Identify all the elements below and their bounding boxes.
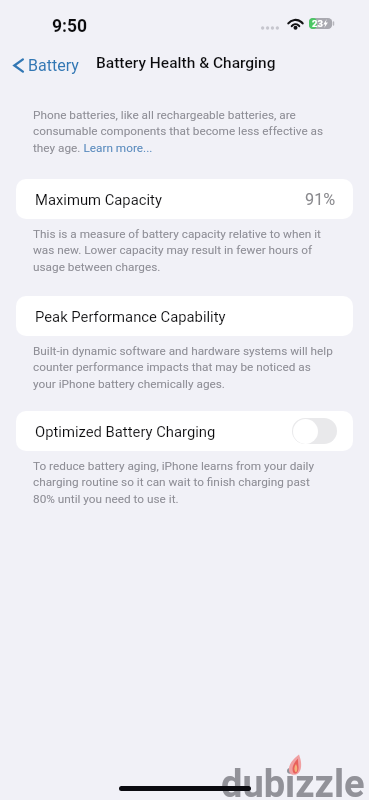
staticText: 23 bbox=[312, 18, 323, 29]
staticText: Built-in dynamic software and hardware s… bbox=[33, 344, 333, 391]
staticText: 9:50 bbox=[52, 16, 88, 37]
other: Back bbox=[13, 57, 24, 74]
staticText: This is a measure of battery capacity re… bbox=[33, 227, 333, 274]
staticText: Phone batteries, like all rechargeable b… bbox=[33, 108, 333, 155]
staticText: 91% bbox=[305, 190, 336, 209]
staticText: Battery bbox=[28, 56, 79, 75]
button[interactable]: Optimized Battery Charging toggle bbox=[292, 418, 337, 444]
button[interactable]: Back bbox=[10, 52, 82, 79]
staticText: To reduce battery aging, iPhone learns f… bbox=[33, 459, 333, 506]
button[interactable]: Peak Performance Capability bbox=[16, 296, 353, 336]
button[interactable]: Maximum Capacity bbox=[16, 179, 353, 219]
staticText: dubizzle bbox=[221, 762, 365, 800]
staticText: Battery Health & Charging bbox=[96, 54, 276, 72]
staticText: Maximum Capacity bbox=[35, 191, 162, 208]
staticText: Peak Performance Capability bbox=[35, 308, 226, 325]
staticText: Optimized Battery Charging bbox=[35, 423, 216, 440]
